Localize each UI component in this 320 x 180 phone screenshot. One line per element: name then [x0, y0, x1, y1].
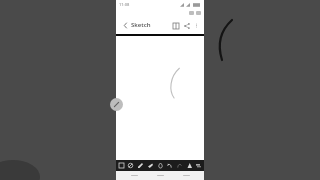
button[interactable]: Layers — [194, 161, 203, 170]
button[interactable]: Back — [126, 171, 142, 180]
button[interactable]: Brush settings — [126, 161, 135, 170]
button[interactable]: Back — [120, 20, 130, 30]
button[interactable]: Brush — [136, 161, 145, 170]
button[interactable]: Gallery — [117, 161, 126, 170]
button[interactable]: Eraser — [146, 161, 155, 170]
button[interactable]: Recents — [178, 171, 194, 180]
button[interactable]: More options — [192, 21, 200, 29]
button[interactable]: Undo — [165, 161, 174, 170]
staticText: 11:08 — [119, 2, 130, 7]
button[interactable]: Share — [181, 20, 192, 31]
staticText: Sketch — [131, 21, 151, 29]
button[interactable]: Color — [156, 161, 165, 170]
button[interactable]: Redo — [175, 161, 184, 170]
button[interactable]: Layers — [110, 98, 123, 111]
button[interactable]: Transform — [185, 161, 194, 170]
button[interactable]: Compare — [170, 20, 181, 31]
button[interactable]: Home — [152, 171, 168, 180]
